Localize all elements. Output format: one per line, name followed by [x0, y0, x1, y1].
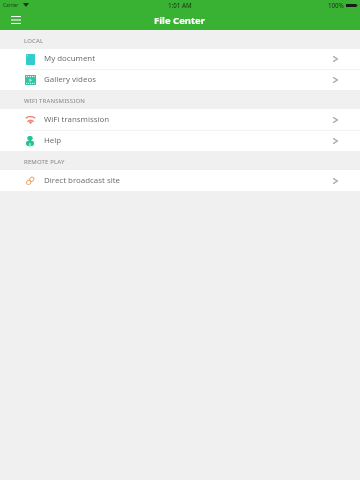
staticText: My document — [44, 53, 96, 64]
button[interactable]: WiFi transmission — [0, 109, 360, 130]
staticText: REMOTE PLAY — [24, 158, 65, 166]
staticText: WIFI TRANSMISSION — [24, 97, 85, 105]
staticText: Carrier — [3, 2, 19, 8]
button[interactable]: Open navigation menu — [0, 10, 26, 30]
staticText: WiFi transmission — [44, 114, 110, 125]
button[interactable]: My document — [0, 48, 360, 69]
staticText: 1:01 AM — [168, 1, 192, 9]
staticText: File Center — [154, 14, 206, 27]
button[interactable]: Help — [0, 130, 360, 151]
button[interactable]: Gallery videos — [0, 69, 360, 90]
staticText: LOCAL — [24, 37, 44, 45]
button[interactable]: Direct broadcast site — [0, 170, 360, 191]
staticText: Direct broadcast site — [44, 175, 121, 186]
staticText: 100% — [328, 1, 344, 9]
staticText: Help — [44, 135, 62, 146]
staticText: Gallery videos — [44, 74, 96, 85]
